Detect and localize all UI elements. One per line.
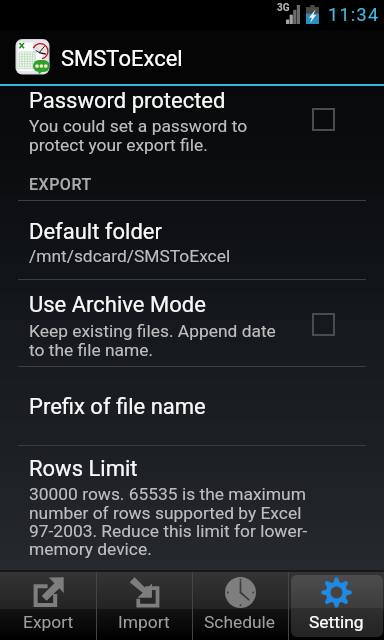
button[interactable]: Export [0,570,96,640]
button[interactable]: Default folder [0,201,384,279]
button[interactable]: Use Archive Mode [0,280,384,366]
button[interactable]: Setting [288,570,384,640]
staticText: SMSToExcel [61,46,183,72]
staticText: 3G [277,2,290,14]
button[interactable]: Schedule [192,570,288,640]
other: Import [129,577,160,608]
staticText: Prefix of file name [29,394,206,420]
staticText: EXPORT [29,175,92,194]
staticText: 30000 rows. 65535 is the maximum number … [29,484,308,559]
staticText: /mnt/sdcard/SMSToExcel [29,246,231,266]
staticText: Import [118,612,170,632]
button[interactable]: Rows Limit [0,446,384,571]
button[interactable]: Import [96,570,192,640]
button[interactable]: Password protected [0,86,384,201]
staticText: Password protected [29,88,226,114]
button[interactable]: Prefix of file name [0,367,384,445]
staticText: Use Archive Mode [29,292,206,318]
other: Schedule [225,577,256,608]
other: Export [33,577,64,608]
staticText: Setting [309,612,364,632]
staticText: Schedule [204,612,276,632]
other: Toggle Use Archive Mode [313,314,334,335]
staticText: Keep existing files. Append date to the … [29,321,276,360]
staticText: Rows Limit [29,456,138,482]
other: Setting [321,577,352,608]
staticText: Default folder [29,219,162,245]
staticText: 11:34 [328,4,380,25]
staticText: Export [23,612,74,632]
other: Toggle Password protected [313,109,334,130]
staticText: You could set a password to protect your… [29,116,248,155]
